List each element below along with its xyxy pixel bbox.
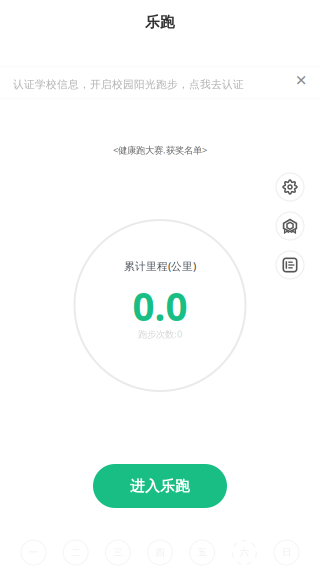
button[interactable]: 五	[190, 540, 215, 565]
button[interactable]: 日	[274, 540, 299, 565]
button[interactable]: 进入乐跑	[93, 464, 227, 508]
button[interactable]: 二	[63, 540, 88, 565]
staticText: 三	[113, 547, 122, 558]
button[interactable]: 三	[105, 540, 130, 565]
staticText: 0.0	[132, 280, 187, 332]
staticText: 进入乐跑	[130, 477, 190, 495]
button[interactable]: <健康跑大赛.获奖名单>	[113, 143, 207, 157]
staticText: 累计里程(公里)	[124, 259, 196, 273]
staticText: 认证学校信息，开启校园阳光跑步，点我去认证	[13, 78, 244, 91]
staticText: ✕	[295, 72, 307, 89]
button[interactable]: 成就	[276, 212, 304, 240]
staticText: 六	[240, 547, 249, 558]
button[interactable]: 四	[147, 540, 172, 565]
staticText: 五	[198, 547, 207, 558]
button[interactable]: 设置	[276, 173, 304, 201]
staticText: 乐跑	[145, 13, 175, 31]
button[interactable]: 认证学校信息，开启校园阳光跑步，点我去认证	[0, 67, 320, 98]
staticText: 日	[282, 547, 291, 558]
staticText: 二	[71, 547, 80, 558]
button[interactable]: 跑步记录	[276, 251, 304, 279]
staticText: 四	[155, 547, 164, 558]
staticText: <健康跑大赛.获奖名单>	[113, 144, 207, 156]
staticText: 跑步次数:0	[138, 328, 182, 340]
